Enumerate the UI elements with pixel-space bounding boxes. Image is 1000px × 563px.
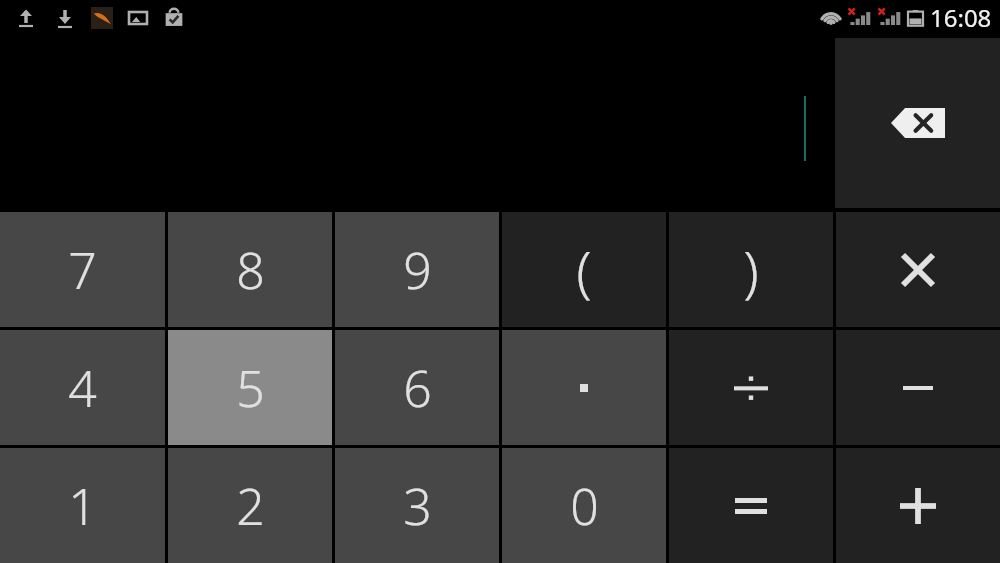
staticText: 6 xyxy=(403,354,432,422)
button[interactable]: − xyxy=(836,330,1000,445)
button[interactable]: 2 xyxy=(168,448,332,563)
staticText: ) xyxy=(743,232,759,308)
staticText: 2 xyxy=(236,472,265,540)
button[interactable]: Backspace xyxy=(835,38,1000,208)
staticText: 8 xyxy=(236,236,265,304)
button[interactable]: ( xyxy=(502,212,666,327)
staticText: 4 xyxy=(68,354,97,422)
staticText: 16:08 xyxy=(930,1,992,34)
staticText: 3 xyxy=(403,472,432,540)
button[interactable]: 3 xyxy=(335,448,499,563)
staticText: 7 xyxy=(68,236,97,304)
button[interactable]: 4 xyxy=(0,330,165,445)
button[interactable]: 8 xyxy=(168,212,332,327)
button[interactable]: ÷ xyxy=(669,330,833,445)
button[interactable]: 6 xyxy=(335,330,499,445)
staticText: ( xyxy=(576,232,592,308)
staticText: 0 xyxy=(570,472,599,540)
button[interactable]: ) xyxy=(669,212,833,327)
button[interactable]: + xyxy=(836,448,1000,563)
staticText: 1 xyxy=(68,472,97,540)
button[interactable]: 5 xyxy=(168,330,332,445)
button[interactable]: 0 xyxy=(502,448,666,563)
button[interactable]: = xyxy=(669,448,833,563)
button[interactable]: × xyxy=(836,212,1000,327)
button[interactable]: . xyxy=(502,330,666,445)
button[interactable]: 1 xyxy=(0,448,165,563)
staticText: 5 xyxy=(236,354,265,422)
staticText: 9 xyxy=(403,236,432,304)
button[interactable]: 7 xyxy=(0,212,165,327)
button[interactable]: 9 xyxy=(335,212,499,327)
